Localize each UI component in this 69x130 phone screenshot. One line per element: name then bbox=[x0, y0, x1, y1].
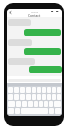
button[interactable] bbox=[49, 108, 54, 114]
button[interactable] bbox=[47, 94, 51, 100]
button[interactable] bbox=[42, 87, 46, 93]
button[interactable]: Video call bbox=[51, 10, 54, 13]
button[interactable] bbox=[24, 48, 61, 55]
button[interactable] bbox=[16, 101, 21, 107]
button[interactable] bbox=[32, 94, 36, 100]
button[interactable] bbox=[29, 66, 62, 73]
button[interactable] bbox=[55, 108, 61, 114]
button[interactable] bbox=[44, 101, 48, 107]
button[interactable] bbox=[52, 87, 56, 93]
button[interactable] bbox=[37, 94, 41, 100]
button[interactable] bbox=[32, 87, 36, 93]
button[interactable] bbox=[39, 101, 43, 107]
button[interactable] bbox=[8, 101, 15, 107]
button[interactable]: Back bbox=[8, 10, 13, 15]
button[interactable] bbox=[52, 94, 56, 100]
button[interactable] bbox=[22, 101, 27, 107]
button[interactable] bbox=[20, 87, 25, 93]
staticText: Contact bbox=[28, 13, 41, 17]
button[interactable]: Call bbox=[56, 10, 59, 13]
button[interactable] bbox=[14, 87, 19, 93]
button[interactable] bbox=[34, 101, 38, 107]
button[interactable] bbox=[26, 87, 31, 93]
button[interactable] bbox=[14, 94, 19, 100]
staticText: online bbox=[31, 10, 38, 13]
button[interactable] bbox=[57, 94, 61, 100]
button[interactable] bbox=[42, 94, 46, 100]
button[interactable] bbox=[8, 108, 14, 114]
button[interactable] bbox=[8, 94, 13, 100]
button[interactable] bbox=[15, 108, 20, 114]
button[interactable] bbox=[8, 39, 32, 46]
button[interactable] bbox=[28, 101, 33, 107]
button[interactable] bbox=[47, 87, 51, 93]
button[interactable] bbox=[8, 87, 13, 93]
button[interactable] bbox=[54, 101, 61, 107]
button[interactable] bbox=[37, 87, 41, 93]
button[interactable] bbox=[49, 101, 53, 107]
button[interactable] bbox=[57, 87, 61, 93]
button[interactable] bbox=[24, 29, 61, 36]
button[interactable] bbox=[8, 19, 31, 26]
button[interactable] bbox=[26, 94, 31, 100]
button[interactable] bbox=[20, 94, 25, 100]
